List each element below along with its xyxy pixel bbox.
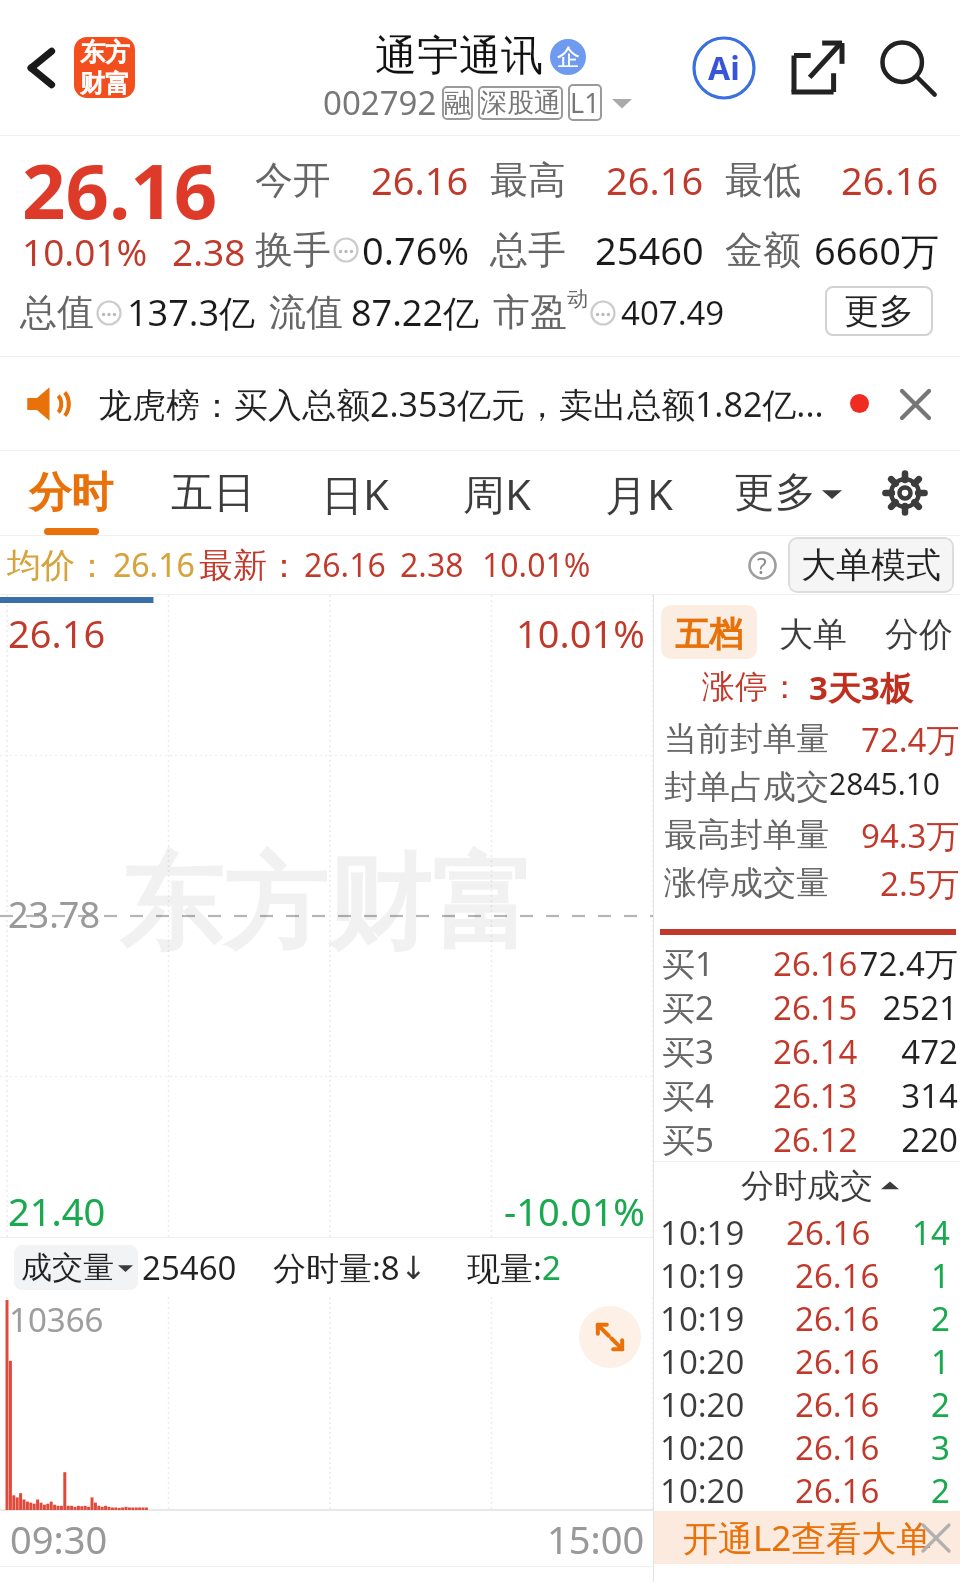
staticText: 1 <box>931 1339 950 1382</box>
staticText: 002792 <box>323 80 437 125</box>
button[interactable]: Search <box>868 28 948 108</box>
staticText: 26.16 <box>304 543 386 587</box>
button[interactable]: 更多 <box>710 451 848 535</box>
staticText: 市盈 <box>493 289 567 336</box>
staticText: 10:20 <box>660 1339 745 1382</box>
staticText: 深股通 <box>480 86 561 120</box>
staticText: 2521 <box>858 985 958 1029</box>
staticText: 企 <box>557 43 580 72</box>
button[interactable]: Help <box>742 545 782 585</box>
button[interactable]: Settings <box>870 458 940 528</box>
staticText: 26.13 <box>773 1073 858 1117</box>
staticText: 10:19 <box>660 1296 745 1339</box>
staticText: 26.16 <box>795 1339 880 1382</box>
button[interactable]: 买5 <box>654 1117 960 1161</box>
button[interactable]: Share <box>778 28 858 108</box>
staticText: ? <box>757 550 767 580</box>
staticText: 6660万 <box>814 224 939 276</box>
button[interactable]: 开通L2查看大单 <box>683 1514 932 1562</box>
staticText: 均价： <box>7 544 109 587</box>
staticText: 26.16 <box>773 941 858 985</box>
staticText: 大单模式 <box>801 543 941 587</box>
staticText: 分价 <box>885 613 953 651</box>
button[interactable]: 五日 <box>142 451 284 535</box>
staticText: 10366 <box>9 1297 104 1342</box>
staticText: 0.76% <box>362 224 469 276</box>
staticText: 大单 <box>779 613 847 651</box>
staticText: 1 <box>931 1253 950 1296</box>
staticText: 最低 <box>725 156 801 204</box>
staticText: 21.40 <box>8 1185 106 1237</box>
staticText: 流值 <box>269 289 343 336</box>
staticText: 最高 <box>490 156 566 204</box>
button[interactable]: 东方 <box>74 37 135 98</box>
staticText: 月K <box>605 465 673 522</box>
staticText: 87.22亿 <box>351 288 480 337</box>
staticText: Ai <box>708 46 740 90</box>
staticText: 15:00 <box>547 1513 645 1565</box>
staticText: 财富 <box>80 68 130 98</box>
staticText: 26.14 <box>773 1029 858 1073</box>
button[interactable]: 分时 <box>0 451 142 535</box>
button[interactable]: 买4 <box>654 1073 960 1117</box>
staticText: 分时成交 <box>741 1165 873 1207</box>
staticText: L1 <box>570 84 600 121</box>
button[interactable]: 更多 <box>825 286 933 336</box>
staticText: 3天3板 <box>809 665 913 710</box>
staticText: 融 <box>444 86 471 120</box>
button[interactable]: Close banner <box>914 1516 958 1560</box>
button[interactable]: 分时成交 <box>654 1162 960 1210</box>
button[interactable]: 周K <box>426 451 568 535</box>
staticText: 龙虎榜：买入总额2.353亿元，卖出总额1.82亿... <box>98 381 824 427</box>
button[interactable]: Back <box>6 33 76 103</box>
button[interactable]: AI assistant <box>684 28 764 108</box>
staticText: 26.16 <box>795 1468 880 1511</box>
staticText: 总值 <box>20 289 94 336</box>
staticText: 涨停： <box>702 666 801 708</box>
staticText: 10:19 <box>660 1210 745 1253</box>
staticText: 10.01% <box>516 607 645 659</box>
staticText: 26.16 <box>606 154 704 206</box>
button[interactable]: Fullscreen chart <box>579 1306 641 1368</box>
staticText: 更多 <box>844 289 914 333</box>
staticText: 10.01% <box>22 226 148 276</box>
staticText: 2.38 <box>172 226 246 276</box>
staticText: 26.16 <box>786 1210 871 1253</box>
staticText: 72.4万 <box>858 941 958 985</box>
staticText: 五日 <box>171 467 255 520</box>
button[interactable]: 买1 <box>654 941 960 985</box>
button[interactable]: 五档 <box>661 605 757 659</box>
staticText: 2 <box>931 1382 950 1425</box>
staticText: 23.78 <box>8 890 101 939</box>
staticText: 换手 <box>255 226 331 274</box>
button[interactable]: 买2 <box>654 985 960 1029</box>
button[interactable]: 大单模式 <box>788 537 954 593</box>
button[interactable]: 成交量 <box>14 1245 138 1290</box>
button[interactable]: 龙虎榜：买入总额2.353亿元，卖出总额1.82亿... <box>0 357 960 450</box>
staticText: 成交量 <box>21 1248 114 1287</box>
staticText: 2.5万 <box>880 861 960 906</box>
button[interactable]: 日K <box>284 451 426 535</box>
staticText: 25460 <box>142 1245 237 1290</box>
staticText: 日K <box>321 465 389 522</box>
button[interactable]: 大单 <box>773 605 853 659</box>
staticText: 94.3万 <box>861 813 960 858</box>
staticText: 72.4万 <box>861 717 960 762</box>
button[interactable]: Dismiss <box>895 384 935 424</box>
staticText: 更多 <box>734 467 816 519</box>
staticText: 2 <box>542 1245 561 1290</box>
staticText: 407.49 <box>621 290 725 335</box>
staticText: 当前封单量 <box>664 718 829 760</box>
staticText: 26.16 <box>795 1253 880 1296</box>
staticText: 220 <box>858 1117 958 1161</box>
staticText: 现量: <box>467 1245 542 1290</box>
button[interactable]: 分价 <box>879 605 959 659</box>
staticText: 封单占成交 <box>664 766 829 808</box>
staticText: 买2 <box>662 985 714 1029</box>
staticText: 周K <box>463 465 531 522</box>
button[interactable]: 月K <box>568 451 710 535</box>
staticText: 东方财富 <box>119 839 535 970</box>
button[interactable]: 买3 <box>654 1029 960 1073</box>
staticText: 14 <box>912 1210 950 1253</box>
staticText: 通宇通讯 <box>375 30 543 83</box>
